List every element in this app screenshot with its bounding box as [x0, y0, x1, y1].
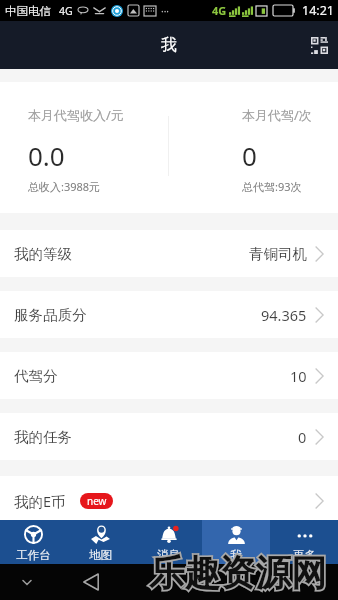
- staticText: 14:21: [302, 2, 334, 19]
- staticText: 本月代驾收入/元: [28, 106, 124, 124]
- staticText: 地图: [89, 548, 112, 562]
- staticText: 94.365: [261, 305, 307, 325]
- staticText: 4G: [59, 4, 73, 18]
- button[interactable]: 消息: [134, 520, 202, 564]
- staticText: 乐趣资源网: [149, 551, 327, 596]
- button[interactable]: 工作台: [0, 520, 67, 564]
- button[interactable]: 我的任务: [0, 413, 338, 460]
- staticText: 我的等级: [14, 245, 72, 263]
- staticText: 我的任务: [14, 428, 72, 446]
- button[interactable]: 我的等级: [0, 230, 338, 277]
- staticText: 总收入:3988元: [28, 179, 101, 194]
- staticText: 4G: [212, 3, 227, 18]
- staticText: 我: [230, 548, 242, 562]
- staticText: 青铜司机: [249, 245, 307, 263]
- staticText: 消息: [157, 548, 180, 562]
- button[interactable]: 代驾分: [0, 352, 338, 399]
- button[interactable]: 我的E币: [0, 476, 338, 520]
- staticText: 服务品质分: [14, 306, 87, 324]
- staticText: 10: [290, 366, 307, 386]
- button[interactable]: 我: [202, 520, 270, 564]
- staticText: new: [87, 494, 107, 508]
- button[interactable]: 服务品质分: [0, 291, 338, 338]
- staticText: 我的E币: [14, 491, 66, 511]
- staticText: 更多: [293, 548, 316, 562]
- staticText: 代驾分: [14, 367, 58, 385]
- staticText: 本月代驾/次: [242, 106, 312, 124]
- staticText: 0.0: [28, 138, 65, 173]
- staticText: 0: [242, 138, 257, 173]
- staticText: ···: [161, 4, 170, 18]
- button[interactable]: 地图: [67, 520, 134, 564]
- staticText: 总代驾:93次: [242, 179, 302, 194]
- button[interactable]: Back: [77, 568, 105, 596]
- button[interactable]: 扫一扫: [304, 30, 334, 60]
- staticText: 0: [298, 427, 307, 447]
- staticText: 乐趣资源网: [149, 551, 327, 596]
- button[interactable]: 更多: [270, 520, 338, 564]
- staticText: 中国电信: [5, 4, 51, 18]
- staticText: 我: [161, 35, 177, 55]
- staticText: 工作台: [16, 548, 51, 562]
- button[interactable]: Hide: [13, 569, 40, 596]
